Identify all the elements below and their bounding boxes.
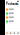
staticText: 9:41 <box>6 0 9 2</box>
staticText: Podcasts <box>6 2 18 6</box>
